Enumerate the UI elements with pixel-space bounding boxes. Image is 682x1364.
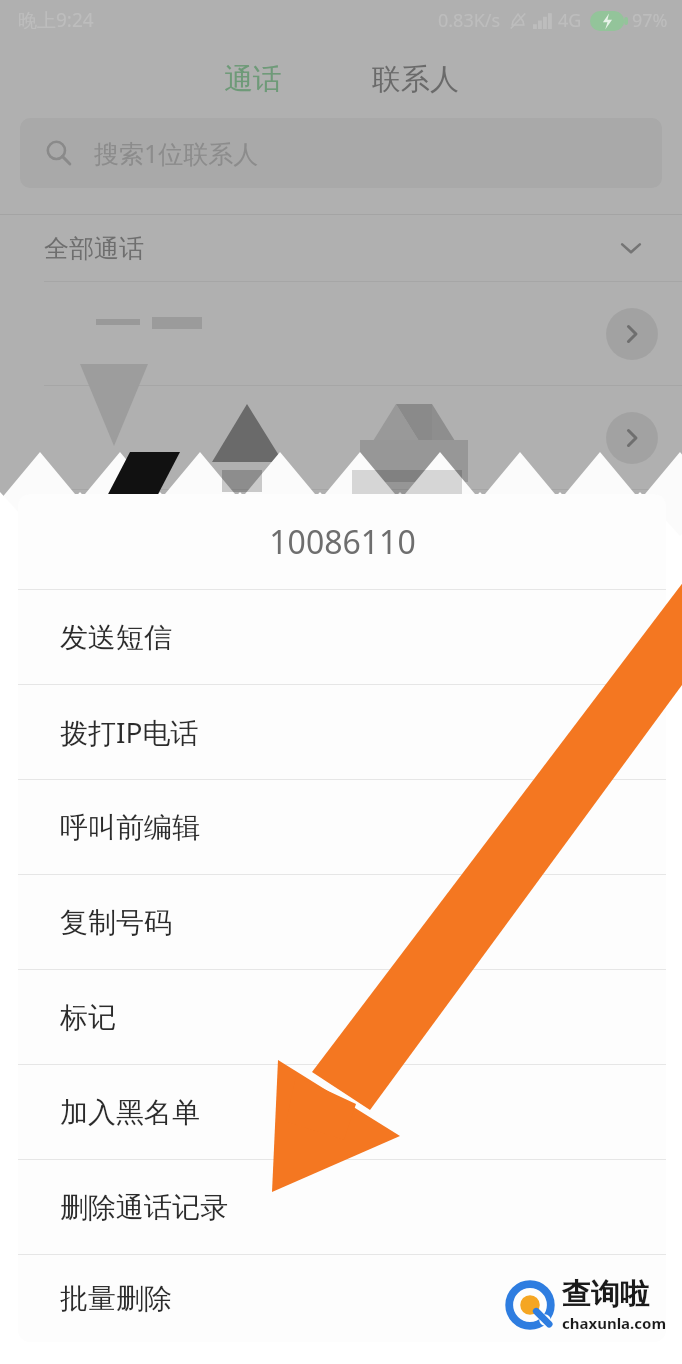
staticText: 查询啦 (562, 1276, 649, 1313)
staticText: 联系人 (372, 61, 459, 98)
button[interactable]: 加入黑名单 (18, 1065, 666, 1159)
button[interactable]: 批量删除 (18, 1255, 666, 1342)
button[interactable]: 呼叫前编辑 (18, 780, 666, 874)
button[interactable]: Call details (606, 412, 658, 464)
staticText: 发送短信 (60, 620, 172, 655)
button[interactable]: 拨打IP电话 (18, 685, 666, 779)
staticText: 97% (632, 8, 668, 33)
staticText: 10086110 (269, 520, 416, 564)
staticText: 0.83K/s (438, 8, 501, 33)
staticText: 拨打IP电话 (60, 713, 199, 751)
staticText: 标记 (60, 1000, 116, 1035)
staticText: 晚上9:24 (18, 7, 94, 33)
staticText: 全部通话 (44, 233, 144, 264)
button[interactable]: Call details (0, 282, 682, 385)
staticText: 批量删除 (60, 1281, 172, 1316)
button[interactable]: 全部通话 (0, 215, 682, 281)
button[interactable]: Call details (0, 386, 682, 489)
button[interactable]: 发送短信 (18, 590, 666, 684)
button[interactable]: 通话 (208, 53, 298, 106)
button[interactable]: 联系人 (356, 53, 475, 106)
button[interactable]: 复制号码 (18, 875, 666, 969)
staticText: 呼叫前编辑 (60, 810, 200, 845)
staticText: 复制号码 (60, 905, 172, 940)
button[interactable]: Call details (606, 308, 658, 360)
button[interactable]: 删除通话记录 (18, 1160, 666, 1254)
staticText: 搜索1位联系人 (94, 136, 259, 170)
staticText: 4G (558, 8, 582, 33)
staticText: 通话 (224, 61, 282, 98)
button[interactable]: 标记 (18, 970, 666, 1064)
staticText: chaxunla.com (562, 1313, 667, 1333)
staticText: 加入黑名单 (60, 1095, 200, 1130)
button[interactable]: 搜索1位联系人 (20, 118, 662, 188)
staticText: 删除通话记录 (60, 1190, 228, 1225)
